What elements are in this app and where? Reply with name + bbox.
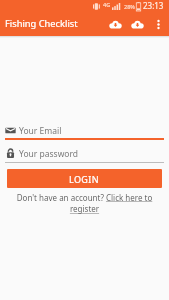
staticText: LOGIN <box>69 173 100 185</box>
staticText: 4G <box>103 1 111 8</box>
staticText: 23:13 <box>143 0 164 11</box>
button[interactable]: Your password <box>0 145 169 162</box>
button[interactable]: LOGIN <box>7 169 162 188</box>
button[interactable]: Upload <box>126 13 148 35</box>
staticText: Your password <box>19 148 79 160</box>
staticText: Fishing Checklist <box>5 17 78 30</box>
button[interactable]: Don't have an account? Click here to reg… <box>10 192 159 215</box>
button[interactable]: More options <box>147 13 169 35</box>
staticText: Your Email <box>19 125 62 137</box>
button[interactable]: Download <box>104 13 126 35</box>
staticText: Don't have an account? Click here to reg… <box>10 192 159 215</box>
button[interactable]: Your Email <box>0 122 169 139</box>
staticText: 28% <box>124 3 135 10</box>
